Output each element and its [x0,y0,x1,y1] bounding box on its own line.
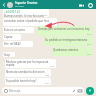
staticText: Muchas gracias por la respuesta rapida [6,60,55,67]
button[interactable]: +34 600 123 [3,9,49,17]
button[interactable]: Necesito cambiar la direccion [5,69,51,77]
staticText: Necesito cambiar la direccion [6,70,45,74]
button[interactable]: Su pedido se entregara manana [44,37,93,46]
button[interactable]: Mensaje [2,87,84,94]
staticText: 9:45 [50,65,55,68]
staticText: 9:41 [51,23,56,26]
button[interactable]: Quedamos atentos [52,47,93,56]
staticText: Ver: ref 8842 [4,42,21,46]
staticText: 9:47 [45,82,50,85]
staticText: en linea [15,5,24,8]
staticText: 9:42 [87,33,92,36]
button[interactable]: consultar sobre el pedido que hice [3,18,57,26]
button[interactable]: Muchas gracias por la respuesta rapida [5,59,56,68]
staticText: 9:40 [43,14,48,17]
staticText: Quedamos atentos [53,48,79,52]
button[interactable]: Back [1,2,7,8]
button[interactable]: Es posible hacerlo hoy? [5,78,51,85]
staticText: 9:46 [45,74,50,77]
button[interactable]: Copiar [3,34,21,40]
staticText: Copiar [4,35,13,39]
staticText: Gracias por contactar con nosotros hoy [38,27,90,31]
button[interactable]: Video call [77,1,85,9]
staticText: +34 600 123 [4,10,20,14]
staticText: 9:43 [87,43,92,46]
staticText: consultar sobre el pedido que hice [4,19,50,23]
staticText: Es posible hacerlo hoy? [6,79,37,83]
staticText: 9:44 [87,53,92,56]
button[interactable]: Ver: ref 8842 [3,41,33,47]
staticText: Esto es un aviso [4,28,25,32]
staticText: Mensaje [9,89,21,93]
button[interactable]: Voice message [86,87,94,95]
staticText: Su pedido se entregara manana [45,38,87,42]
button[interactable]: Esto es un aviso [3,27,34,33]
button[interactable]: Stop [3,52,15,57]
button[interactable]: Gracias por contactar con nosotros hoy [37,26,93,36]
staticText: Buenas tardes, le escribo para [4,14,44,17]
staticText: Soporte Tecnico [15,1,38,5]
staticText: Stop [4,53,10,57]
button[interactable]: Call [86,1,94,9]
